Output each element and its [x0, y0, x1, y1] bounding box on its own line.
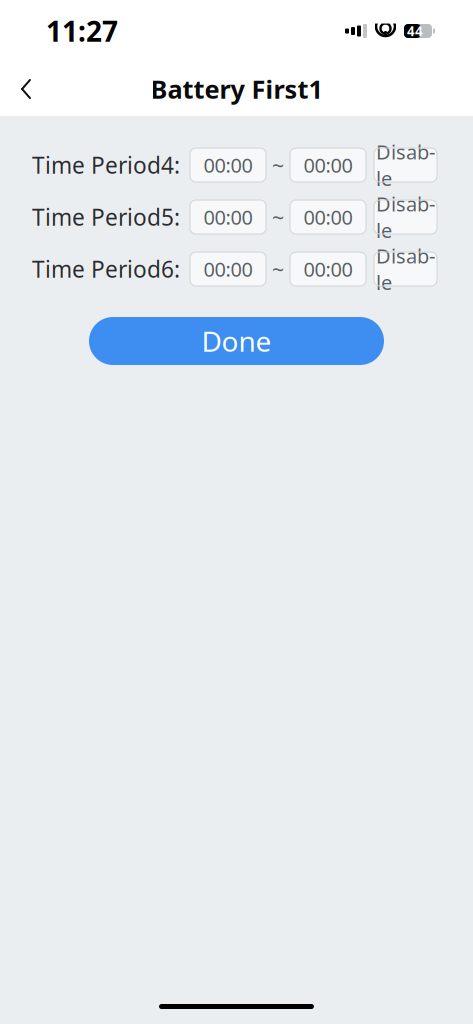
staticText: 11:27	[46, 12, 118, 50]
staticText: ~	[272, 203, 284, 231]
button[interactable]: Disable	[374, 200, 437, 234]
staticText: Time Period4:	[32, 150, 180, 180]
staticText: 00:00	[203, 204, 252, 230]
button[interactable]: 00:00	[290, 148, 366, 182]
staticText: 00:00	[303, 256, 352, 282]
button[interactable]: 00:00	[190, 200, 266, 234]
staticText: Time Period5:	[32, 202, 180, 232]
staticText: Disable	[376, 138, 435, 191]
staticText: Done	[201, 322, 271, 360]
staticText: 00:00	[303, 204, 352, 230]
staticText: ~	[272, 255, 284, 283]
staticText: Disable	[376, 190, 435, 243]
button[interactable]: Done	[89, 317, 384, 365]
staticText: 00:00	[203, 256, 252, 282]
button[interactable]: Disable	[374, 148, 437, 182]
button[interactable]: Disable	[374, 252, 437, 286]
staticText: ~	[272, 151, 284, 179]
staticText: 44	[407, 22, 423, 40]
button[interactable]: Back	[0, 62, 52, 116]
staticText: Time Period6:	[32, 254, 180, 284]
staticText: Battery First1	[150, 72, 322, 106]
button[interactable]: 00:00	[190, 252, 266, 286]
button[interactable]: 00:00	[290, 200, 366, 234]
button[interactable]: 00:00	[290, 252, 366, 286]
staticText: Disable	[376, 242, 435, 295]
staticText: 00:00	[303, 152, 352, 178]
staticText: 00:00	[203, 152, 252, 178]
button[interactable]: 00:00	[190, 148, 266, 182]
